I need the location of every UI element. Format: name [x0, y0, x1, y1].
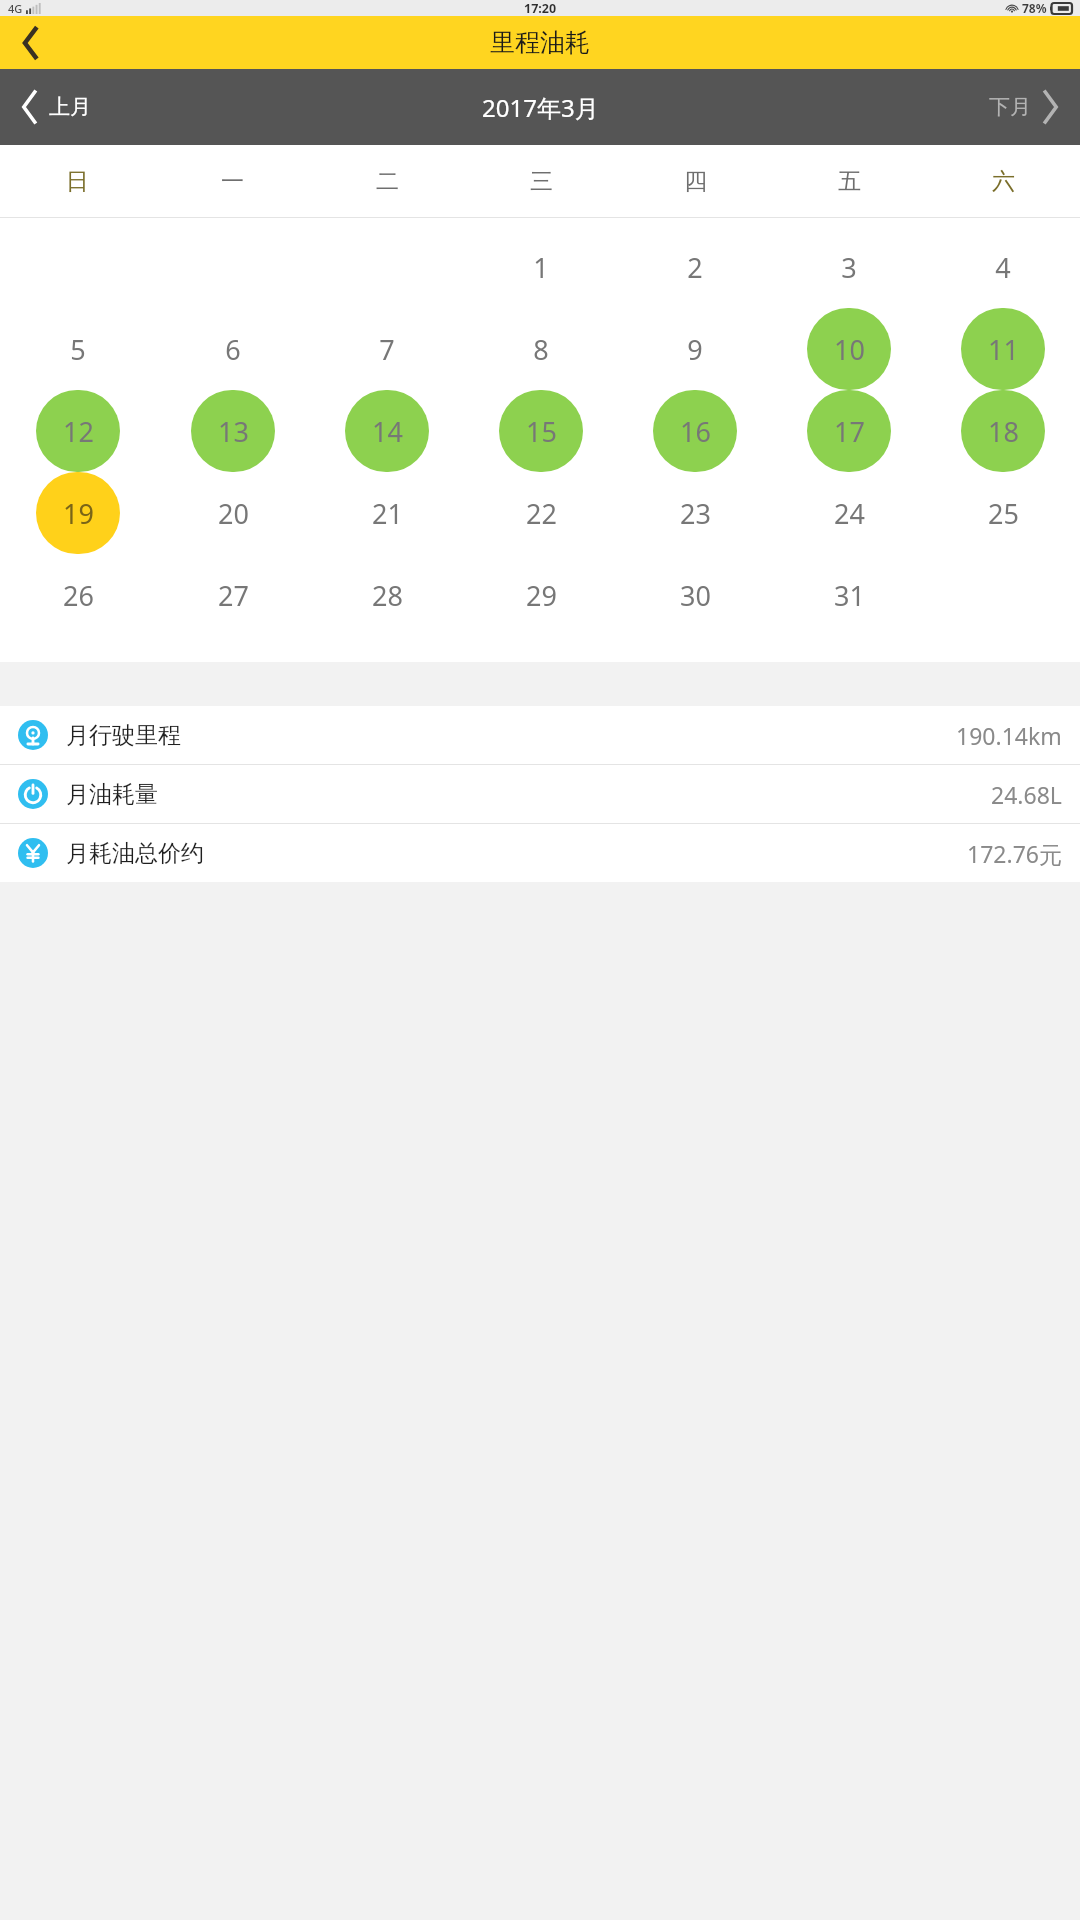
staticText: 24.68L	[991, 779, 1062, 810]
button[interactable]: 上月	[14, 86, 99, 128]
staticText: 27	[218, 577, 249, 614]
button[interactable]: 11	[961, 308, 1045, 390]
staticText: 16	[680, 413, 711, 450]
staticText: 上月	[49, 94, 91, 120]
staticText: 24	[834, 495, 865, 532]
button[interactable]: 25	[961, 472, 1045, 554]
staticText: 13	[218, 413, 249, 450]
staticText: 五	[838, 167, 861, 196]
staticText: 20	[218, 495, 249, 532]
staticText: 8	[533, 331, 549, 368]
button[interactable]: 下月	[981, 86, 1066, 128]
staticText: 172.76元	[967, 838, 1062, 869]
staticText: 月耗油总价约	[66, 839, 204, 868]
button[interactable]: 12	[36, 390, 120, 472]
button[interactable]: 2	[653, 226, 737, 308]
staticText: 28	[372, 577, 403, 614]
button[interactable]: 月油耗量	[0, 765, 1080, 823]
button[interactable]: 23	[653, 472, 737, 554]
button[interactable]: 5	[36, 308, 120, 390]
staticText: 10	[834, 331, 865, 368]
staticText: 4	[995, 249, 1011, 286]
button[interactable]: 月行驶里程	[0, 706, 1080, 764]
button[interactable]: 20	[191, 472, 275, 554]
staticText: 6	[225, 331, 241, 368]
staticText: 3	[841, 249, 857, 286]
staticText: 78%	[1022, 0, 1047, 16]
staticText: 三	[530, 167, 553, 196]
staticText: 22	[526, 495, 557, 532]
staticText: 18	[988, 413, 1019, 450]
staticText: 11	[988, 331, 1019, 368]
staticText: 2	[687, 249, 703, 286]
staticText: 4G	[8, 1, 23, 16]
staticText: 里程油耗	[490, 27, 590, 58]
staticText: 17	[834, 413, 865, 450]
button[interactable]: 31	[807, 554, 891, 636]
staticText: 14	[372, 413, 403, 450]
staticText: 31	[834, 577, 865, 614]
staticText: 30	[680, 577, 711, 614]
button[interactable]: 3	[807, 226, 891, 308]
staticText: 1	[533, 249, 549, 286]
button[interactable]: 9	[653, 308, 737, 390]
button[interactable]: 16	[653, 390, 737, 472]
button[interactable]: 8	[499, 308, 583, 390]
staticText: 25	[988, 495, 1019, 532]
staticText: 月行驶里程	[66, 721, 181, 750]
staticText: 190.14km	[956, 720, 1062, 751]
staticText: 2017年3月	[482, 91, 599, 124]
button[interactable]: 10	[807, 308, 891, 390]
button[interactable]: 7	[345, 308, 429, 390]
staticText: 7	[379, 331, 395, 368]
staticText: 日	[66, 167, 89, 196]
staticText: 六	[992, 167, 1015, 196]
button[interactable]: 18	[961, 390, 1045, 472]
staticText: 下月	[989, 94, 1031, 120]
button[interactable]: 26	[36, 554, 120, 636]
staticText: 四	[684, 167, 707, 196]
button[interactable]: 21	[345, 472, 429, 554]
button[interactable]: 4	[961, 226, 1045, 308]
staticText: 26	[63, 577, 94, 614]
button[interactable]: 28	[345, 554, 429, 636]
staticText: 15	[526, 413, 557, 450]
staticText: 月油耗量	[66, 780, 158, 809]
staticText: 12	[63, 413, 94, 450]
button[interactable]: 1	[499, 226, 583, 308]
button[interactable]: 22	[499, 472, 583, 554]
button[interactable]: 14	[345, 390, 429, 472]
staticText: 23	[680, 495, 711, 532]
staticText: 5	[70, 331, 86, 368]
button[interactable]: 29	[499, 554, 583, 636]
button[interactable]: 月耗油总价约	[0, 824, 1080, 882]
button[interactable]: 13	[191, 390, 275, 472]
staticText: 一	[221, 167, 244, 196]
button[interactable]: 24	[807, 472, 891, 554]
button[interactable]: 返回	[0, 16, 62, 69]
button[interactable]: 6	[191, 308, 275, 390]
staticText: 19	[63, 495, 94, 532]
staticText: 21	[372, 495, 403, 532]
button[interactable]: 27	[191, 554, 275, 636]
button[interactable]: 17	[807, 390, 891, 472]
button[interactable]: 15	[499, 390, 583, 472]
staticText: 17:20	[524, 0, 557, 16]
staticText: 29	[526, 577, 557, 614]
button[interactable]: 19	[36, 472, 120, 554]
staticText: 二	[376, 167, 399, 196]
staticText: 9	[687, 331, 703, 368]
button[interactable]: 30	[653, 554, 737, 636]
